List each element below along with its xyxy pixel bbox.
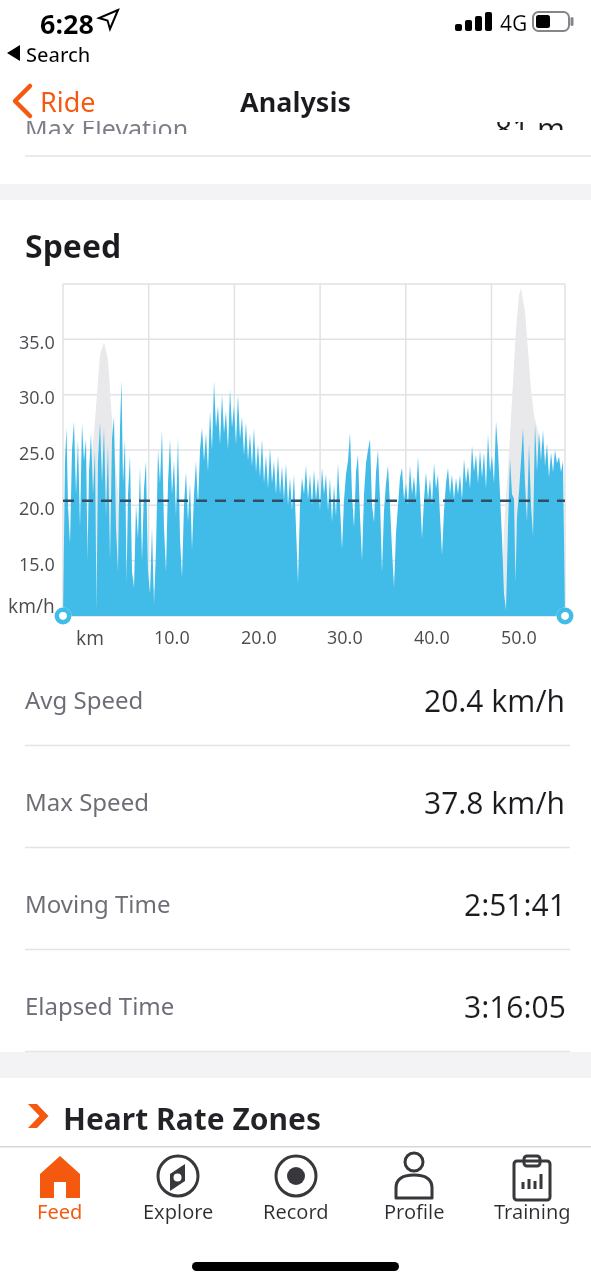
staticText: 30.0 (327, 625, 363, 650)
staticText: km (76, 625, 104, 651)
staticText: Speed (25, 224, 122, 268)
staticText: Elapsed Time (25, 989, 175, 1022)
staticText: 3:16:05 (464, 986, 566, 1027)
staticText: 30.0 (19, 385, 55, 410)
staticText: Heart Rate Zones (63, 1098, 322, 1139)
staticText: 20.4 km/h (424, 680, 566, 721)
button[interactable]: Feed (0, 1148, 119, 1225)
staticText: 2:51:41 (464, 884, 566, 925)
staticText: Search (26, 41, 91, 68)
staticText: Avg Speed (25, 683, 144, 716)
staticText: Moving Time (25, 887, 171, 920)
staticText: Max Speed (25, 785, 149, 818)
staticText: 35.0 (19, 330, 55, 355)
staticText: 25.0 (19, 441, 55, 466)
staticText: 10.0 (154, 625, 190, 650)
staticText: 20.0 (241, 625, 277, 650)
staticText: 4G (500, 9, 528, 38)
staticText: Max Elevation (25, 121, 189, 134)
button[interactable]: Heart Rate Zones (0, 1084, 591, 1146)
staticText: Explore (143, 1198, 214, 1225)
staticText: Ride (40, 83, 96, 120)
staticText: km/h (8, 593, 55, 619)
button[interactable]: Record (237, 1148, 355, 1225)
staticText: 6:28 (40, 5, 94, 42)
staticText: Profile (384, 1198, 445, 1225)
staticText: Record (263, 1198, 329, 1225)
staticText: 20.0 (19, 496, 55, 521)
staticText: 40.0 (414, 625, 450, 650)
staticText: 81 m (495, 122, 566, 130)
staticText: Analysis (240, 83, 352, 120)
staticText: 15.0 (19, 552, 55, 577)
staticText: Feed (37, 1198, 83, 1225)
staticText: Training (494, 1198, 571, 1225)
staticText: 50.0 (501, 625, 537, 650)
button[interactable]: Training (473, 1148, 591, 1225)
button[interactable]: Ride (4, 76, 124, 126)
button[interactable]: Profile (355, 1148, 473, 1225)
staticText: 37.8 km/h (424, 782, 566, 823)
button[interactable]: Explore (119, 1148, 237, 1225)
